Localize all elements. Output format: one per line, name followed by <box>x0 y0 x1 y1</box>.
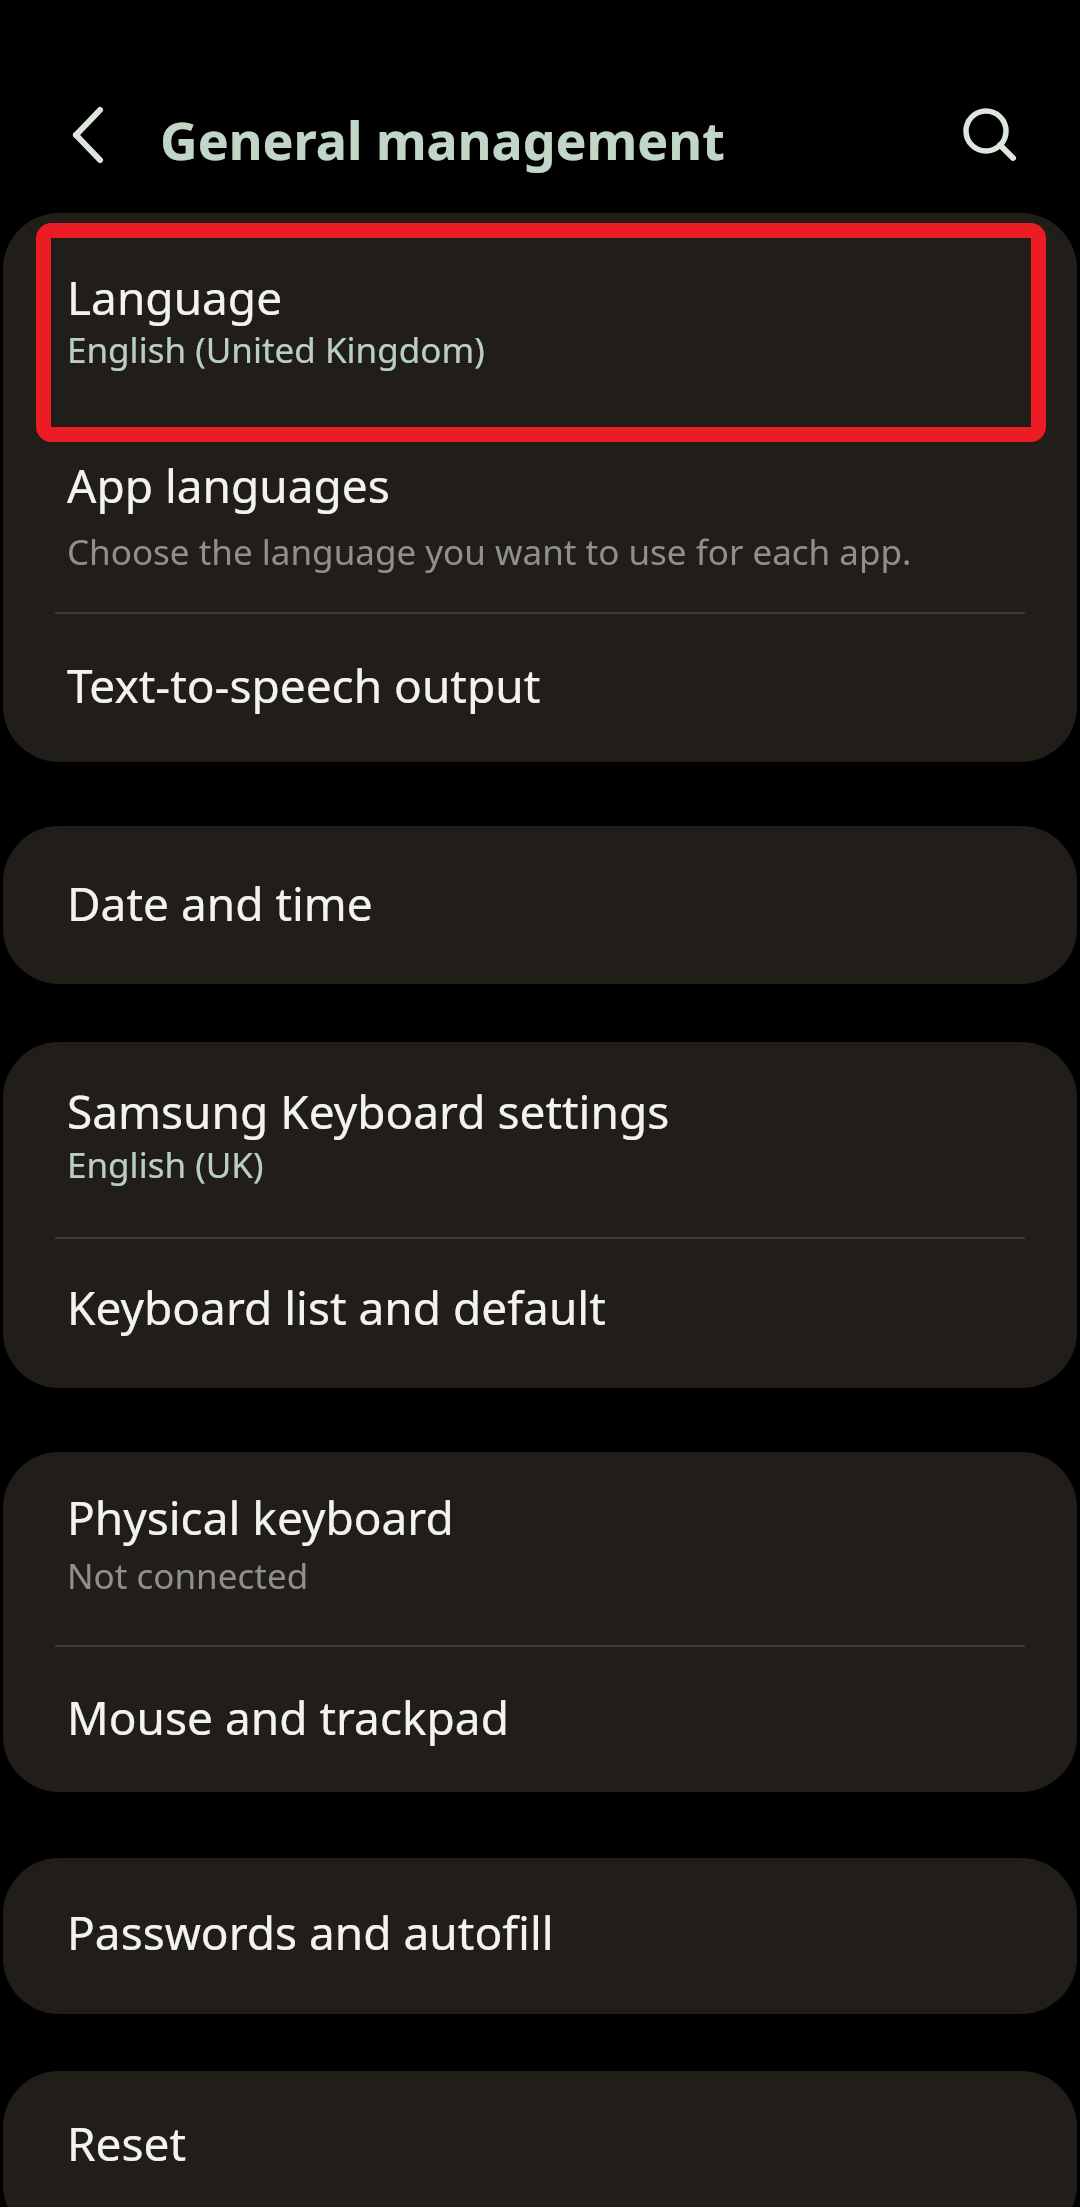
staticText: English (UK) <box>67 1141 264 1189</box>
button[interactable]: App languages <box>3 416 1077 612</box>
button[interactable]: Text-to-speech output <box>3 612 1077 762</box>
button[interactable]: Samsung Keyboard settings <box>3 1042 1077 1237</box>
staticText: Reset <box>67 2112 187 2175</box>
staticText: Keyboard list and default <box>67 1276 606 1339</box>
button[interactable]: Reset <box>3 2071 1077 2207</box>
staticText: Language <box>67 266 283 329</box>
button[interactable] <box>55 105 125 170</box>
button[interactable]: Physical keyboard <box>3 1452 1077 1645</box>
staticText: Passwords and autofill <box>67 1901 554 1964</box>
button[interactable]: Date and time <box>3 826 1077 984</box>
staticText: Samsung Keyboard settings <box>67 1080 670 1143</box>
staticText: Text-to-speech output <box>67 654 541 717</box>
button[interactable]: Keyboard list and default <box>3 1237 1077 1388</box>
staticText: Mouse and trackpad <box>67 1686 509 1749</box>
button[interactable]: Mouse and trackpad <box>3 1645 1077 1792</box>
button[interactable]: Language <box>3 213 1077 416</box>
staticText: English (United Kingdom) <box>67 326 485 374</box>
button[interactable]: Passwords and autofill <box>3 1858 1077 2014</box>
staticText: App languages <box>67 454 390 517</box>
button[interactable] <box>955 100 1030 175</box>
staticText: Choose the language you want to use for … <box>67 528 912 576</box>
staticText: Physical keyboard <box>67 1486 454 1549</box>
staticText: General management <box>160 104 725 175</box>
staticText: Date and time <box>67 872 373 935</box>
staticText: Not connected <box>67 1552 309 1600</box>
